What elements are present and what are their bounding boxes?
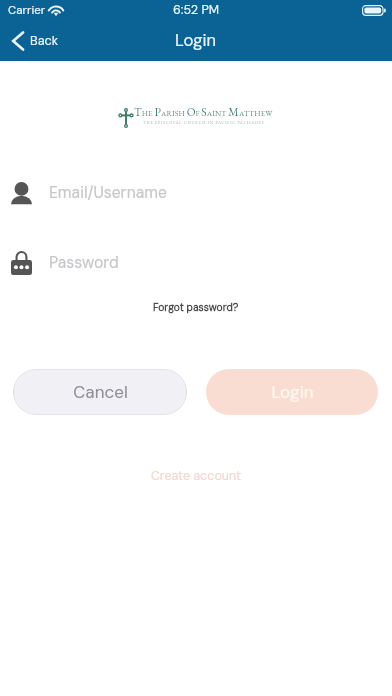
- button[interactable]: Cancel: [13, 369, 187, 415]
- button[interactable]: Back: [0, 24, 73, 58]
- staticText: Cancel: [73, 381, 128, 403]
- staticText: THE EPISCOPAL CHURCH IN PACIFIC PALISADE…: [143, 120, 265, 125]
- staticText: THE PARISH OF SAINT MATTHEW: [134, 104, 273, 119]
- other: Wi-Fi signal: [49, 5, 63, 15]
- staticText: Back: [30, 33, 59, 49]
- staticText: Login: [271, 381, 314, 403]
- button[interactable]: Email/Username: [0, 179, 392, 207]
- button[interactable]: Login: [206, 369, 378, 415]
- staticText: Email/Username: [49, 183, 167, 203]
- button[interactable]: Forgot password?: [143, 295, 249, 320]
- button[interactable]: Password: [0, 249, 392, 277]
- other: Battery full: [362, 5, 386, 16]
- staticText: 6:52 PM: [173, 2, 220, 18]
- button[interactable]: Create account: [141, 462, 252, 490]
- other: Back: [12, 31, 24, 51]
- staticText: Login: [175, 30, 217, 52]
- staticText: Password: [49, 253, 119, 273]
- staticText: Carrier: [8, 3, 46, 18]
